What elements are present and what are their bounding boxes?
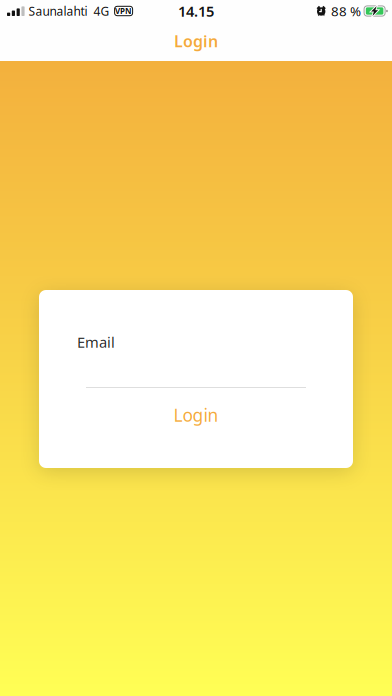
- staticText: Login: [174, 30, 218, 52]
- staticText: 4G: [94, 3, 110, 19]
- button[interactable]: Email: [39, 290, 353, 388]
- staticText: VPN: [115, 6, 132, 16]
- staticText: 14.15: [178, 1, 214, 21]
- staticText: 88 %: [331, 2, 361, 20]
- button[interactable]: Login: [39, 400, 353, 430]
- staticText: Saunalahti: [29, 3, 88, 19]
- staticText: Login: [173, 403, 218, 426]
- staticText: Email: [77, 332, 115, 352]
